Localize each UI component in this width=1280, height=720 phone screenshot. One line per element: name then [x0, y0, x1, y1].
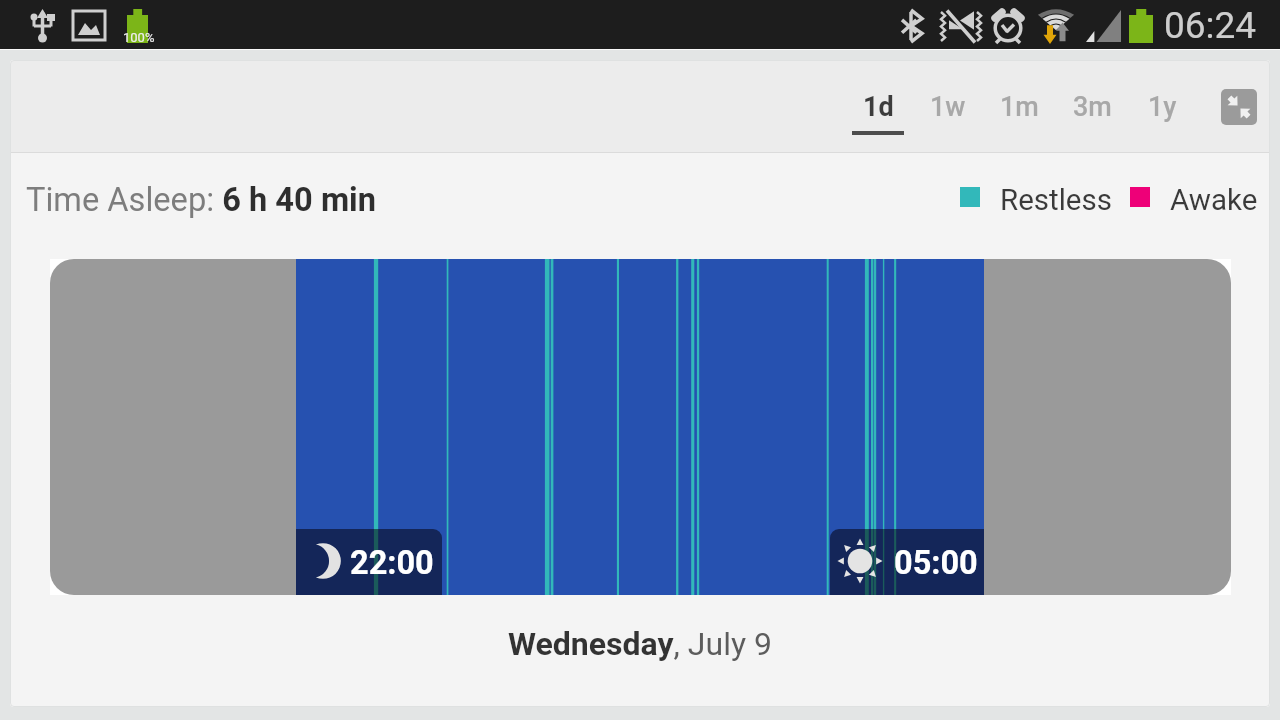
button[interactable]: Awake — [1130, 183, 1258, 211]
staticText: Wednesday, July 9 — [508, 625, 772, 663]
button[interactable]: Restless — [960, 183, 1112, 211]
staticText: Restless — [1000, 183, 1112, 211]
button[interactable]: 1m — [983, 66, 1055, 146]
staticText: Time Asleep: 6 h 40 min — [26, 181, 377, 219]
staticText: 1y — [1148, 91, 1177, 123]
staticText: 06:24 — [1164, 4, 1257, 47]
button[interactable]: 1d — [842, 66, 914, 146]
staticText: 3m — [1073, 91, 1112, 123]
button[interactable]: Collapse chart — [1221, 89, 1257, 125]
staticText: 1w — [930, 91, 966, 123]
staticText: Awake — [1170, 183, 1258, 211]
staticText: 22:00 — [350, 544, 434, 582]
button[interactable]: 1w — [912, 66, 984, 146]
staticText: 1m — [1000, 91, 1039, 123]
staticText: 1d — [863, 91, 894, 123]
staticText: 100% — [123, 30, 155, 45]
staticText: 05:00 — [894, 544, 978, 582]
button[interactable]: 3m — [1056, 66, 1128, 146]
button[interactable]: Sleep timeline for Wednesday, July 9 — [50, 259, 1231, 595]
button[interactable]: 1y — [1126, 66, 1198, 146]
